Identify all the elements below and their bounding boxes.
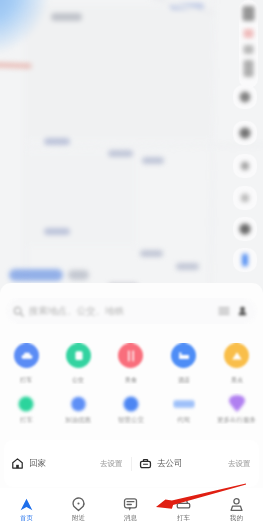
- staticText: 附近: [72, 514, 85, 522]
- button[interactable]: Profile: [236, 305, 249, 318]
- staticText: 打车: [177, 514, 190, 522]
- staticText: 我的: [230, 514, 243, 522]
- staticText: 消息: [124, 514, 137, 522]
- button[interactable]: 打车: [0, 393, 52, 424]
- staticText: 智慧公交: [118, 416, 144, 424]
- staticText: 景点: [231, 376, 243, 384]
- button[interactable]: Compass: [233, 217, 257, 241]
- button[interactable]: 打车: [157, 488, 210, 531]
- button[interactable]: My location: [233, 248, 257, 272]
- button[interactable]: 更多出行服务: [210, 393, 263, 424]
- button[interactable]: 美食: [104, 343, 157, 384]
- button[interactable]: Zoom in: [233, 154, 257, 178]
- button[interactable]: 消息: [104, 488, 157, 531]
- button[interactable]: 回家: [4, 440, 131, 487]
- staticText: 去设置: [100, 459, 123, 468]
- staticText: 打车: [20, 376, 32, 384]
- button[interactable]: 我的: [210, 488, 263, 531]
- button[interactable]: 附近: [52, 488, 104, 531]
- staticText: 搜索地点、公交、地铁: [29, 305, 124, 317]
- staticText: 打车: [20, 416, 33, 424]
- staticText: 加油优惠: [65, 416, 91, 424]
- staticText: 代驾: [177, 416, 190, 424]
- staticText: 去公司: [157, 458, 183, 469]
- staticText: 酒店: [178, 376, 190, 384]
- button[interactable]: 智慧公交: [104, 393, 157, 424]
- button[interactable]: Map layers: [239, 0, 258, 88]
- button[interactable]: 加油优惠: [52, 393, 104, 424]
- button[interactable]: 打车: [0, 343, 52, 384]
- button[interactable]: 首页: [0, 488, 52, 531]
- button[interactable]: More: [218, 305, 230, 317]
- button[interactable]: 酒店: [157, 343, 210, 384]
- staticText: 美食: [125, 376, 137, 384]
- button[interactable]: 代驾: [157, 393, 210, 424]
- button[interactable]: 去公司: [132, 440, 259, 487]
- staticText: 更多出行服务: [217, 416, 256, 424]
- button[interactable]: Traffic: [233, 85, 257, 109]
- button[interactable]: 搜索地点、公交、地铁: [7, 298, 256, 324]
- button[interactable]: Zoom out: [233, 186, 257, 210]
- staticText: 首页: [20, 514, 33, 522]
- staticText: 回家: [29, 458, 46, 469]
- button[interactable]: Map layers: [233, 121, 257, 145]
- button[interactable]: 景点: [210, 343, 263, 384]
- staticText: 公交: [72, 376, 84, 384]
- button[interactable]: 公交: [52, 343, 104, 384]
- staticText: 去设置: [228, 459, 251, 468]
